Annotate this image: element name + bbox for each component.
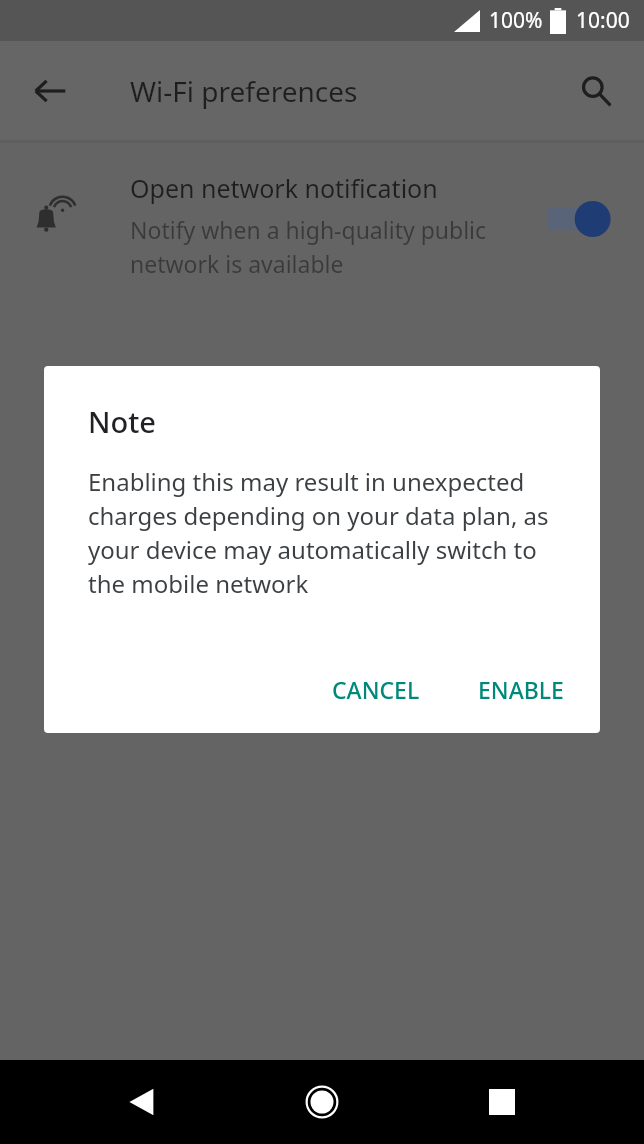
staticText: 10:00 bbox=[576, 6, 630, 35]
staticText: Automatically switch to mobile bbox=[130, 403, 461, 434]
staticText: ENABLE bbox=[478, 674, 564, 705]
staticText: Auto network switch bbox=[130, 365, 371, 399]
button[interactable]: ENABLE bbox=[460, 660, 582, 719]
button[interactable]: Search bbox=[568, 63, 624, 119]
staticText: Notify when a high-quality public networ… bbox=[130, 214, 510, 279]
button[interactable]: Open network notification bbox=[0, 143, 644, 347]
staticText: Open network notification bbox=[130, 171, 438, 205]
staticText: 100% bbox=[489, 6, 543, 35]
button[interactable]: Home bbox=[284, 1064, 360, 1140]
staticText: Note bbox=[88, 402, 156, 441]
button[interactable]: CANCEL bbox=[314, 660, 438, 719]
staticText: Wi-Fi preferences bbox=[130, 72, 358, 110]
staticText: CANCEL bbox=[332, 674, 420, 705]
button[interactable]: Recent apps bbox=[464, 1064, 540, 1140]
staticText: Enabling this may result in unexpected c… bbox=[88, 465, 564, 600]
button[interactable]: Back bbox=[104, 1064, 180, 1140]
button[interactable]: Back bbox=[22, 63, 78, 119]
button[interactable]: Auto network switch bbox=[0, 347, 644, 467]
